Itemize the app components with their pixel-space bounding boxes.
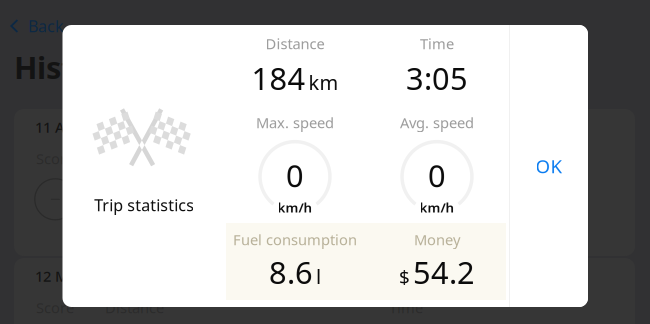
staticText: Max. speed	[256, 113, 334, 132]
staticText: Distance	[105, 149, 164, 168]
staticText: 3:05	[406, 58, 468, 98]
staticText: Money	[414, 230, 460, 249]
staticText: OK	[535, 154, 562, 178]
staticText: km/h	[277, 198, 312, 216]
staticText: 11 Apr	[35, 117, 80, 137]
staticText: Distance	[105, 298, 164, 317]
staticText: 184	[251, 58, 305, 98]
staticText: Score	[36, 149, 74, 168]
staticText: Distance	[265, 34, 324, 53]
staticText: $	[399, 264, 410, 289]
staticText: l	[316, 263, 321, 289]
staticText: 8.6	[269, 252, 313, 292]
staticText: Fuel consumption	[233, 230, 357, 249]
staticText: 54.2	[413, 252, 475, 292]
button[interactable]: Back	[0, 13, 110, 39]
staticText: Time	[389, 298, 423, 317]
button[interactable]: OK	[510, 25, 588, 307]
staticText: km/h	[419, 198, 454, 216]
staticText: Time	[389, 149, 423, 168]
staticText: 0	[286, 155, 304, 196]
staticText: Time	[420, 34, 454, 53]
staticText: Avg. speed	[400, 113, 474, 132]
staticText: Back	[28, 15, 64, 37]
staticText: Score	[36, 298, 74, 317]
staticText: History	[14, 47, 125, 87]
staticText: 0	[428, 155, 446, 196]
staticText: Trip statistics	[94, 194, 194, 216]
staticText: km	[308, 69, 338, 95]
staticText: 12 May	[35, 266, 84, 286]
